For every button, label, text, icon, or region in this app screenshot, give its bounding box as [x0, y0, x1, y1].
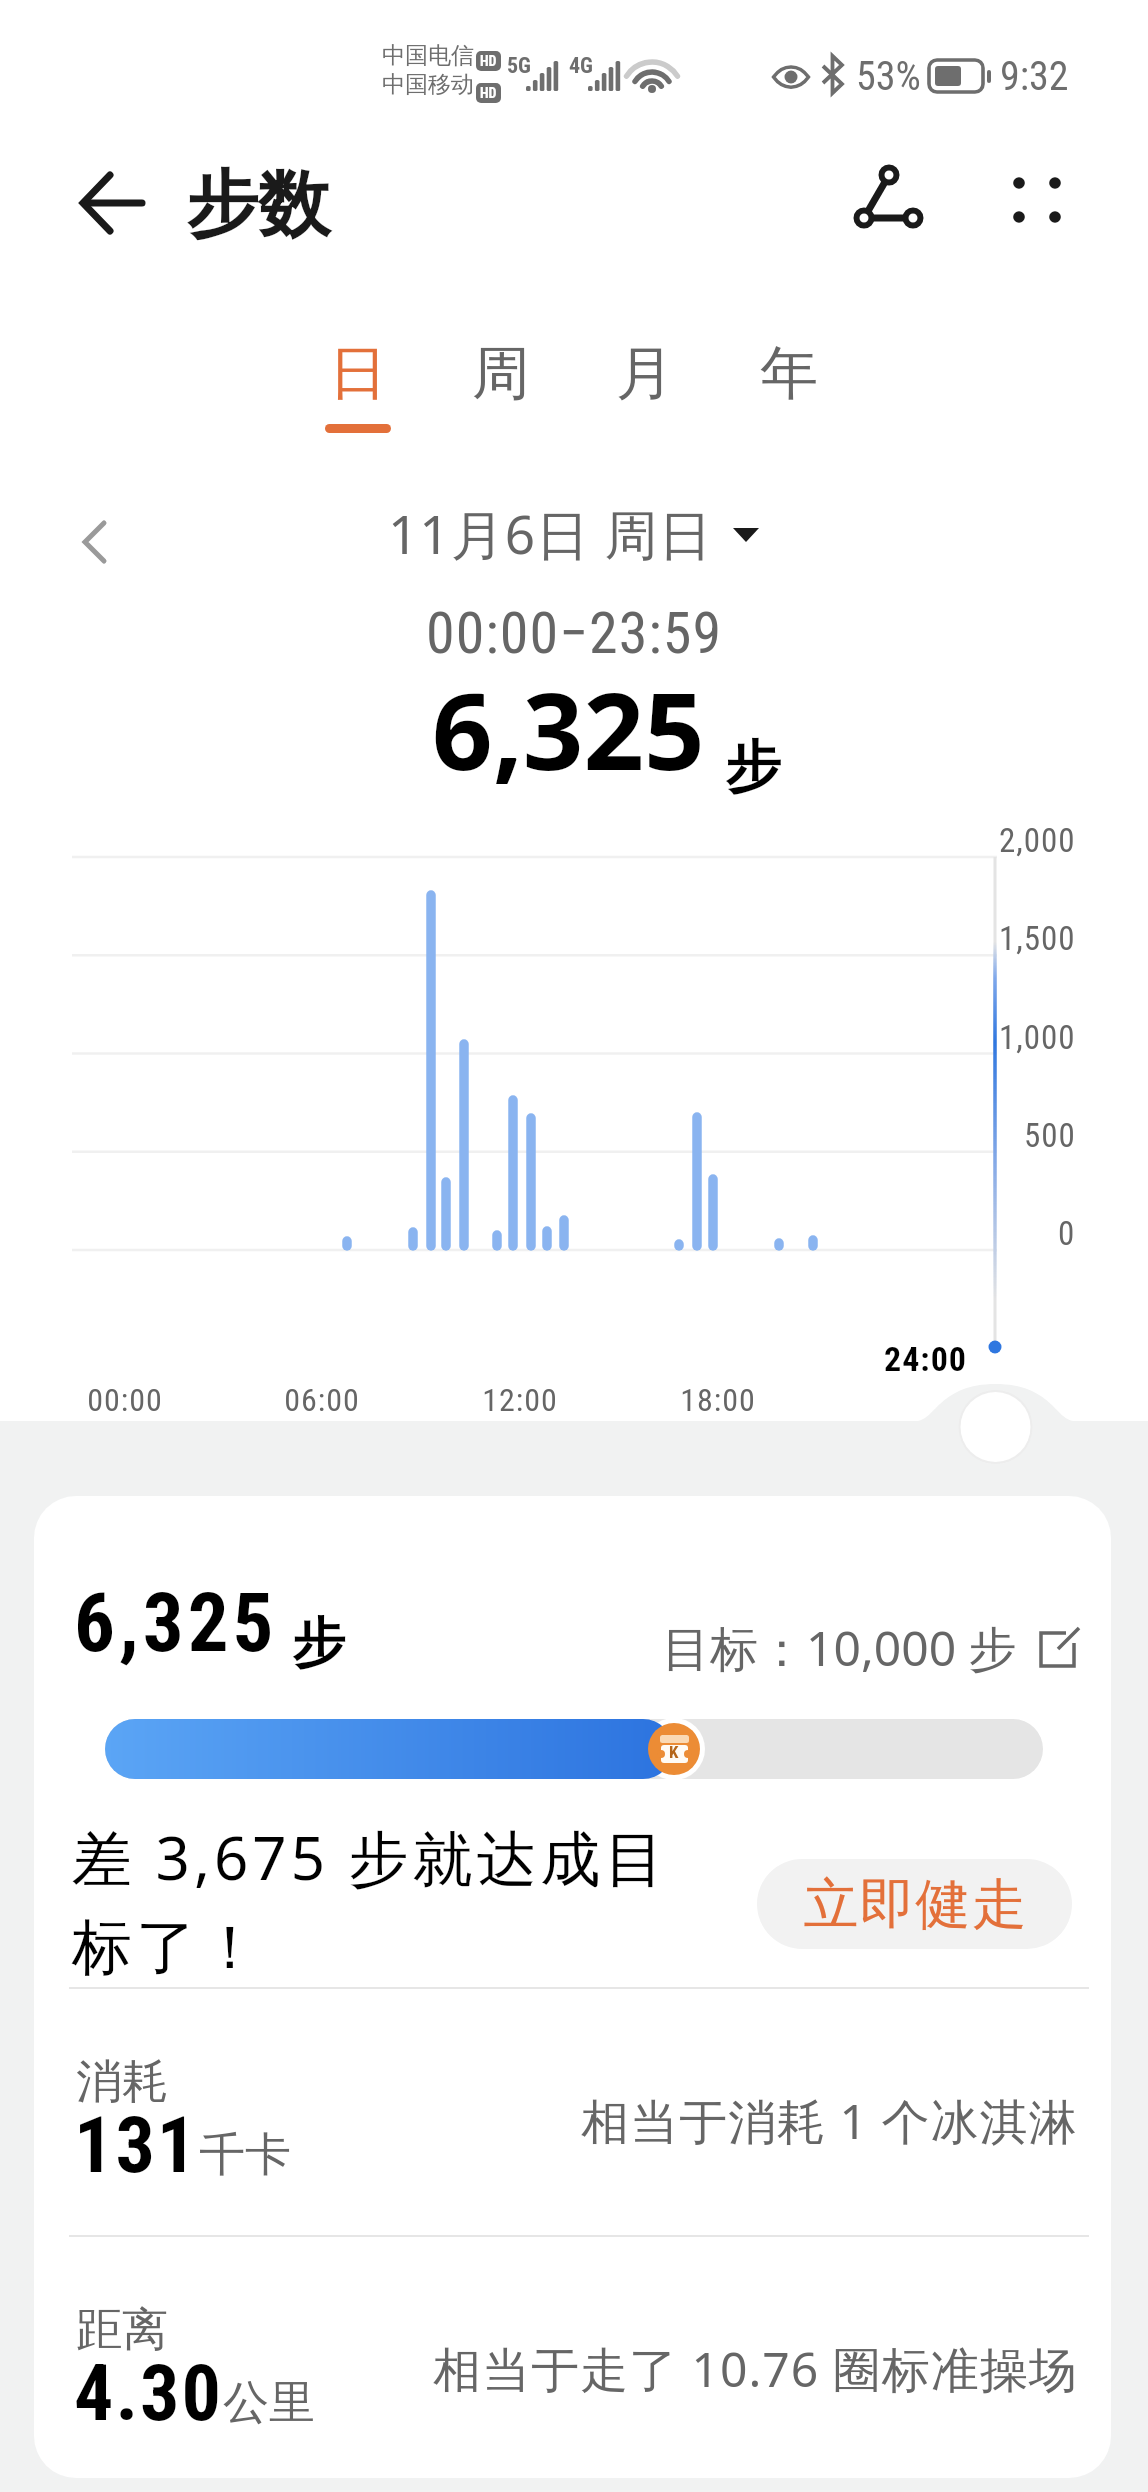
staticText: 4.30 — [74, 2348, 223, 2439]
staticText: 2,000 — [999, 821, 1076, 860]
staticText: 立即健走 — [803, 1870, 1027, 1939]
button[interactable]: More options — [990, 152, 1086, 248]
staticText: 18:00 — [680, 1381, 756, 1419]
button[interactable]: 立即健走 — [757, 1859, 1072, 1949]
staticText: 6,325 — [74, 1576, 278, 1671]
staticText: 月 — [616, 337, 674, 410]
staticText: 12:00 — [482, 1381, 558, 1419]
staticText: 周 — [472, 337, 530, 410]
staticText: 131 — [74, 2100, 199, 2191]
staticText: 差 3,675 步就达成目 标了！ — [72, 1816, 669, 1986]
button[interactable]: 月 — [583, 337, 707, 445]
staticText: 年 — [760, 337, 818, 410]
staticText: 步 — [725, 732, 781, 803]
staticText: 公里 — [223, 2374, 315, 2432]
staticText: 11月6日 周日 — [388, 497, 713, 569]
staticText: 中国电信 — [382, 41, 474, 70]
staticText: 步数 — [186, 160, 330, 251]
staticText: 相当于走了 10.76 圈标准操场 — [433, 2336, 1078, 2402]
staticText: HD — [480, 85, 497, 101]
staticText: HD — [480, 53, 497, 69]
button[interactable]: Share — [845, 152, 935, 242]
staticText: 目标：10,000 步 — [662, 1615, 1017, 1681]
staticText: 相当于消耗 1 个冰淇淋 — [581, 2088, 1078, 2154]
staticText: 消耗 — [76, 2053, 168, 2111]
staticText: 53% — [856, 53, 921, 100]
staticText: 9:32 — [1000, 53, 1069, 100]
staticText: 6,325 — [432, 657, 705, 801]
staticText: 中国移动 — [382, 70, 474, 99]
button[interactable]: 日 — [296, 337, 420, 445]
staticText: 24:00 — [884, 1339, 968, 1379]
staticText: 1,000 — [999, 1018, 1076, 1057]
button[interactable]: Back — [62, 160, 142, 240]
staticText: 06:00 — [284, 1381, 360, 1419]
button[interactable]: 年 — [727, 337, 851, 445]
staticText: 1,500 — [999, 919, 1076, 958]
button[interactable]: Previous day — [64, 507, 134, 577]
staticText: 千卡 — [199, 2126, 291, 2184]
staticText: 0 — [1058, 1214, 1076, 1253]
staticText: 日 — [329, 337, 387, 410]
staticText: 00:00 — [87, 1381, 163, 1419]
staticText: 步 — [292, 1610, 345, 1677]
staticText: 00:00−23:59 — [426, 599, 723, 667]
staticText: K — [669, 1742, 679, 1762]
staticText: 距离 — [76, 2301, 168, 2359]
staticText: 500 — [1024, 1116, 1076, 1155]
button[interactable]: 目标：10,000 步 — [662, 1615, 1081, 1681]
staticText: 4G — [569, 53, 593, 79]
button[interactable]: 周 — [439, 337, 563, 445]
staticText: 5G — [507, 53, 531, 79]
